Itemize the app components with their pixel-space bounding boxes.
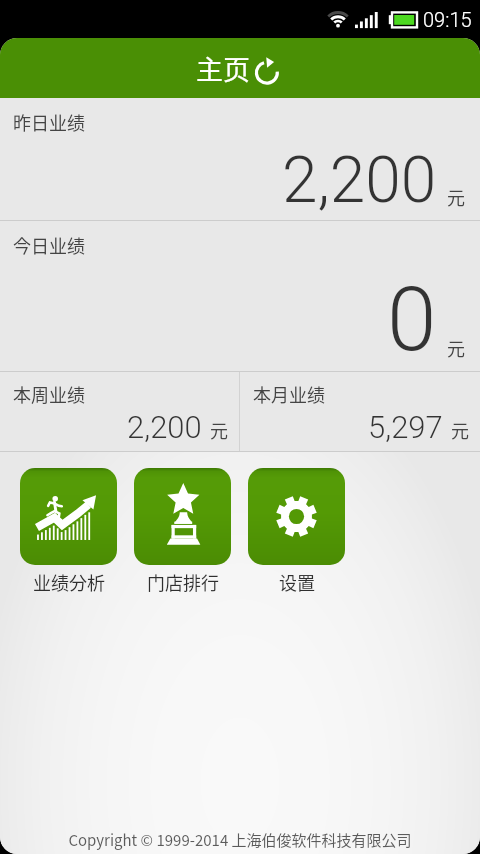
button[interactable]: 昨日业绩 [0,98,480,220]
staticText: 业绩分析 [33,569,105,595]
staticText: 2,200 [282,143,437,218]
staticText: 本周业绩 [13,381,85,407]
other: 门店排行 [134,468,231,565]
staticText: 元 [447,335,465,361]
staticText: 设置 [279,569,315,595]
button[interactable]: 本月业绩 [240,372,480,451]
staticText: 元 [451,417,469,443]
button[interactable]: 本周业绩 [0,372,239,451]
staticText: 本月业绩 [253,381,325,407]
other: 设置 [248,468,345,565]
other: 业绩分析 [20,468,117,565]
staticText: 昨日业绩 [13,109,85,135]
staticText: 09:15 [423,8,472,31]
staticText: 门店排行 [147,569,219,595]
staticText: 元 [447,184,465,210]
button[interactable]: 设置 [248,468,345,595]
button[interactable]: 业绩分析 [20,468,117,595]
staticText: 今日业绩 [13,232,85,258]
staticText: 2,200 [127,409,202,445]
staticText: 主页 [196,49,250,88]
staticText: Copyright © 1999-2014 上海伯俊软件科技有限公司 [0,829,480,851]
button[interactable]: 今日业绩 [0,221,480,371]
button[interactable]: 门店排行 [134,468,231,595]
staticText: 0 [387,267,437,371]
staticText: 5,297 [368,409,443,445]
button[interactable]: Refresh [250,54,284,88]
staticText: 元 [210,417,228,443]
